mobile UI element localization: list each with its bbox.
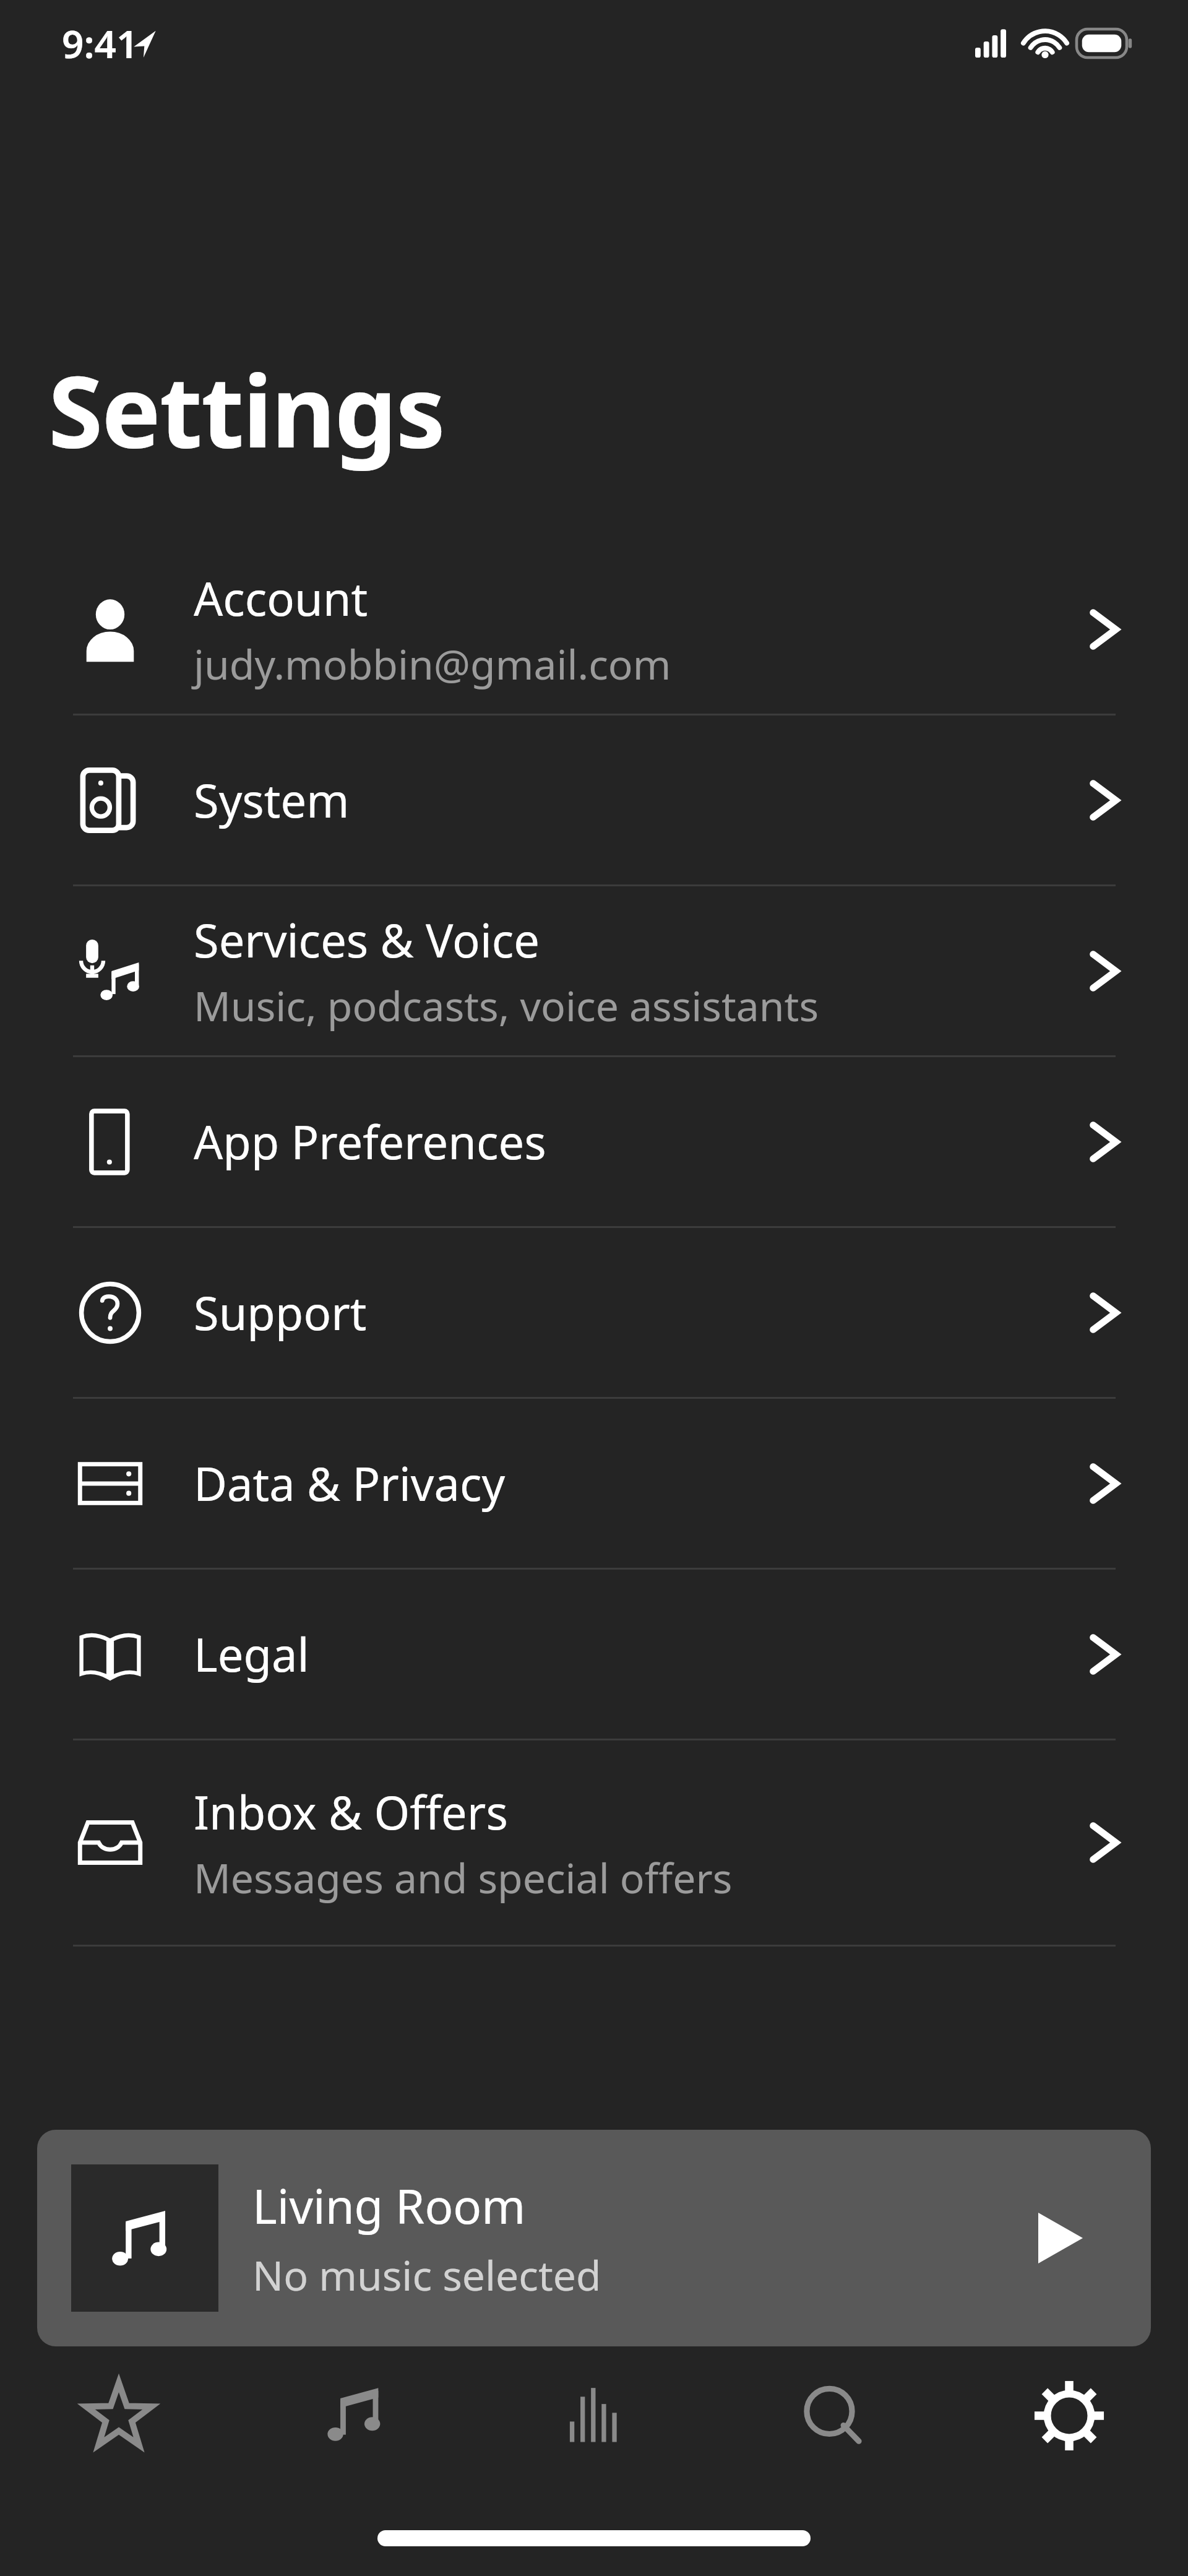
staticText: System <box>194 769 350 831</box>
button[interactable]: Search <box>713 2369 950 2462</box>
staticText: Support <box>194 1281 367 1344</box>
button[interactable]: Play <box>1030 2207 1091 2269</box>
button[interactable]: Support <box>0 1228 1188 1397</box>
button[interactable]: Settings <box>950 2369 1188 2462</box>
staticText: Services & Voice <box>194 909 540 971</box>
button[interactable]: Favorites <box>0 2369 238 2462</box>
button[interactable]: Data & Privacy <box>0 1399 1188 1568</box>
staticText: Music, podcasts, voice assistants <box>194 977 819 1033</box>
button[interactable]: Services & Voice <box>0 886 1188 1055</box>
staticText: Inbox & Offers <box>194 1781 508 1843</box>
button[interactable]: Living Room <box>37 2130 1151 2346</box>
staticText: judy.mobbin@gmail.com <box>194 636 671 691</box>
button[interactable]: System <box>0 715 1188 884</box>
staticText: App Preferences <box>194 1110 546 1173</box>
staticText: Legal <box>194 1623 309 1685</box>
staticText: Settings <box>48 342 444 477</box>
button[interactable]: Music <box>238 2369 475 2462</box>
staticText: No music selected <box>252 2247 601 2302</box>
staticText: Living Room <box>252 2174 526 2238</box>
staticText: 9:41 <box>62 17 139 69</box>
staticText: Messages and special offers <box>194 1849 733 1905</box>
staticText: Account <box>194 567 368 629</box>
button[interactable]: Account <box>0 545 1188 714</box>
button[interactable]: Inbox & Offers <box>0 1740 1188 1945</box>
staticText: Data & Privacy <box>194 1452 506 1515</box>
button[interactable]: App Preferences <box>0 1057 1188 1226</box>
button[interactable]: Legal <box>0 1570 1188 1739</box>
button[interactable]: Browse <box>475 2369 713 2462</box>
